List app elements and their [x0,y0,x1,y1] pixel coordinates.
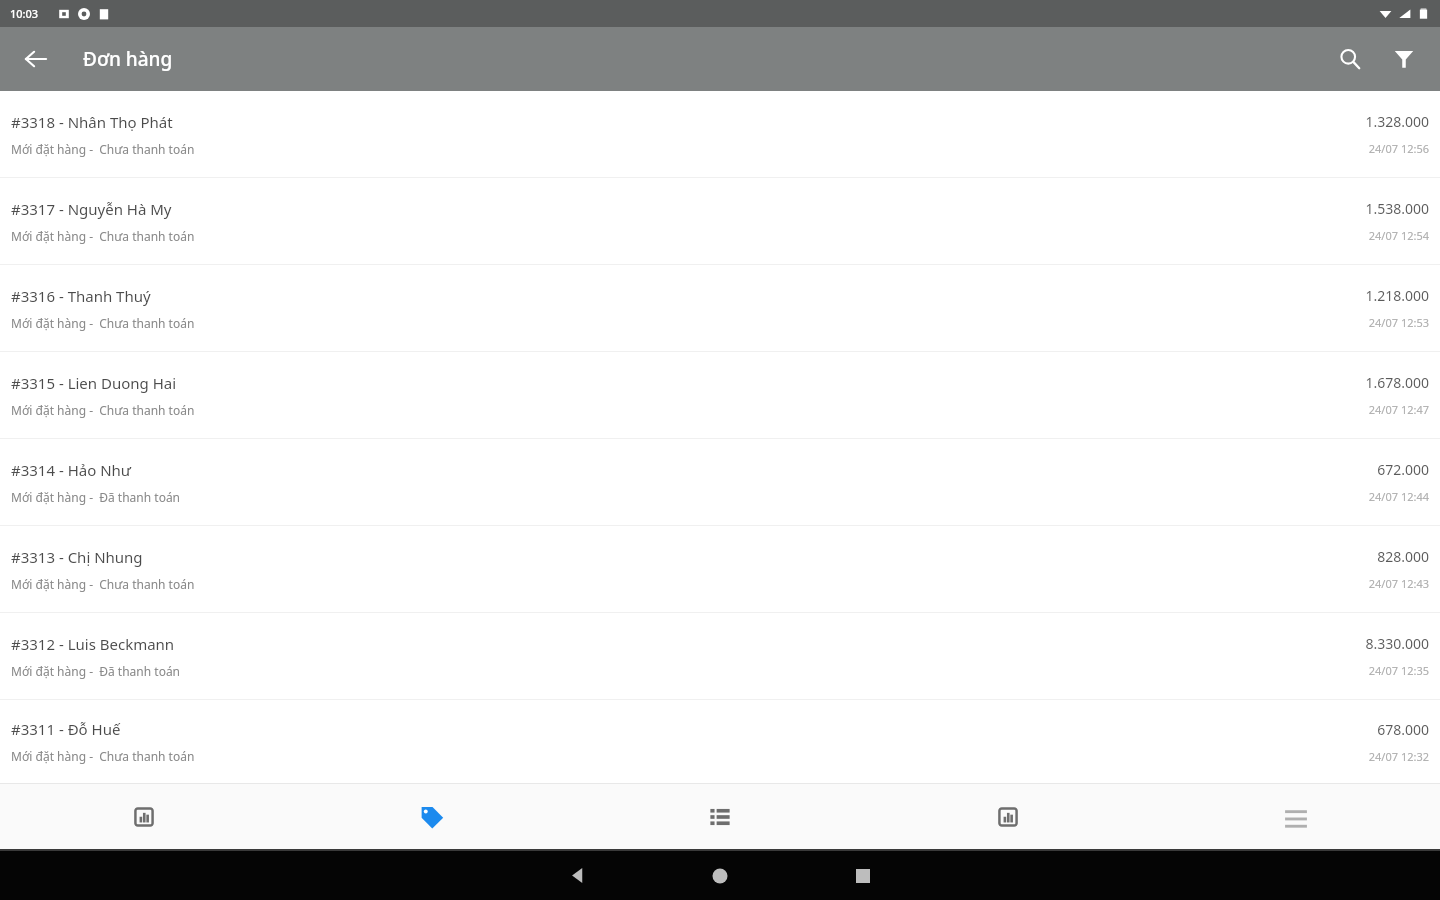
staticText: #3318 - Nhân Thọ Phát [11,112,173,132]
button[interactable]: #3311 - Đỗ Huế [0,700,1440,783]
staticText: 828.000 [1377,547,1429,566]
staticText: Mới đặt hàng - Chưa thanh toán [11,402,195,418]
staticText: Mới đặt hàng - Đã thanh toán [11,489,181,505]
button[interactable]: #3312 - Luis Beckmann [0,613,1440,699]
button[interactable]: Menu [1152,784,1440,849]
staticText: 24/07 12:32 [1368,749,1429,764]
staticText: 678.000 [1377,720,1429,739]
staticText: 24/07 12:53 [1368,315,1429,330]
staticText: 24/07 12:56 [1368,141,1429,156]
staticText: 10:03 [10,6,39,21]
button[interactable]: Home [686,851,754,900]
staticText: #3317 - Nguyễn Hà My [11,199,172,219]
button[interactable]: Back [543,851,611,900]
staticText: Mới đặt hàng - Chưa thanh toán [11,576,195,592]
staticText: Đơn hàng [83,46,173,72]
button[interactable]: #3318 - Nhân Thọ Phát [0,91,1440,177]
button[interactable]: #3314 - Hảo Như [0,439,1440,525]
staticText: 672.000 [1377,460,1429,479]
button[interactable]: Products [576,784,864,849]
staticText: #3313 - Chị Nhung [11,547,143,567]
staticText: 24/07 12:54 [1368,228,1429,243]
staticText: 1.218.000 [1365,286,1429,305]
staticText: 8.330.000 [1365,634,1429,653]
button[interactable]: Back [12,35,60,83]
staticText: #3311 - Đỗ Huế [11,719,121,739]
staticText: 1.538.000 [1365,199,1429,218]
button[interactable]: Search [1326,35,1374,83]
staticText: 24/07 12:44 [1368,489,1429,504]
button[interactable]: Recents [829,851,897,900]
staticText: 24/07 12:47 [1368,402,1429,417]
staticText: Mới đặt hàng - Chưa thanh toán [11,141,195,157]
staticText: #3316 - Thanh Thuý [11,286,151,306]
button[interactable]: #3317 - Nguyễn Hà My [0,178,1440,264]
staticText: 24/07 12:35 [1368,663,1429,678]
button[interactable]: #3316 - Thanh Thuý [0,265,1440,351]
button[interactable]: Orders [288,784,576,849]
button[interactable]: #3315 - Lien Duong Hai [0,352,1440,438]
staticText: #3315 - Lien Duong Hai [11,373,177,393]
staticText: Mới đặt hàng - Đã thanh toán [11,663,181,679]
button[interactable]: Reports [0,784,288,849]
staticText: #3314 - Hảo Như [11,460,131,480]
staticText: 1.678.000 [1365,373,1429,392]
staticText: 24/07 12:43 [1368,576,1429,591]
staticText: 1.328.000 [1365,112,1429,131]
button[interactable]: #3313 - Chị Nhung [0,526,1440,612]
staticText: Mới đặt hàng - Chưa thanh toán [11,315,195,331]
staticText: Mới đặt hàng - Chưa thanh toán [11,748,195,764]
button[interactable]: Filter [1380,35,1428,83]
staticText: #3312 - Luis Beckmann [11,634,175,654]
button[interactable]: Statistics [864,784,1152,849]
staticText: Mới đặt hàng - Chưa thanh toán [11,228,195,244]
